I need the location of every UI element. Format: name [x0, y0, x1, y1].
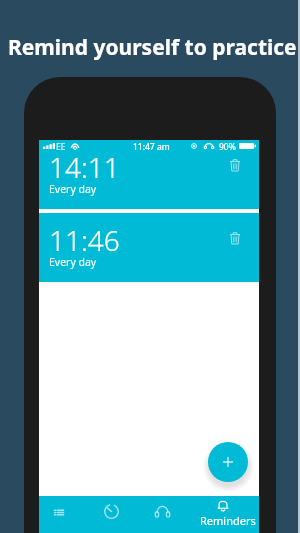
staticText: Every day	[49, 182, 97, 196]
staticText: 90%	[219, 141, 236, 151]
staticText: Every day	[49, 255, 97, 269]
button[interactable]: Alarms	[39, 496, 80, 533]
button[interactable]: Sounds	[143, 496, 182, 533]
button[interactable]: Add reminder	[208, 442, 248, 482]
button[interactable]: 14:11	[39, 140, 259, 209]
button[interactable]: Timer	[80, 496, 143, 533]
staticText: 11:46	[49, 221, 120, 259]
staticText: EE	[56, 141, 66, 151]
staticText: 11:47 am	[133, 141, 170, 151]
button[interactable]: Delete alarm	[224, 227, 246, 249]
staticText: 14:11	[49, 148, 120, 186]
button[interactable]: Delete alarm	[224, 154, 246, 176]
staticText: Reminders	[200, 513, 256, 528]
button[interactable]: 11:46	[39, 213, 259, 282]
button[interactable]: Reminders	[182, 496, 259, 533]
staticText: Remind yourself to practice	[8, 33, 297, 62]
